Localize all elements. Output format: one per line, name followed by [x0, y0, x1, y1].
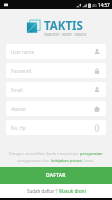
staticText: Email	[11, 87, 23, 93]
staticText: No. Hp	[11, 125, 26, 131]
staticText: TAKTIS	[44, 18, 83, 34]
staticText: penggunaan dan	[17, 158, 51, 163]
staticText: kami.	[83, 158, 95, 163]
staticText: Masuk disini	[59, 188, 86, 194]
staticText: User name	[11, 49, 35, 55]
staticText: 14:57	[98, 2, 110, 8]
staticText: Sudah daftar ?	[27, 188, 59, 194]
button[interactable]: Alamat	[6, 101, 106, 116]
staticText: 4G	[92, 3, 97, 8]
button[interactable]: User name	[6, 44, 106, 59]
staticText: DAFTAR	[46, 172, 66, 179]
staticText: kebijakan privasi	[51, 158, 83, 163]
staticText: TRANSPORT MONEY CREATIVE	[44, 33, 87, 37]
staticText: Dengan mendaftar, Anda menyetujui	[9, 151, 80, 156]
button[interactable]: DAFTAR	[0, 167, 112, 184]
staticText: Password	[11, 68, 32, 74]
staticText: Alamat	[11, 106, 26, 112]
button[interactable]: Password	[6, 63, 106, 78]
button[interactable]: Sudah daftar ?	[0, 184, 112, 198]
button[interactable]: Email	[6, 82, 106, 97]
button[interactable]: No. Hp	[6, 120, 106, 135]
staticText: persyaratan	[80, 151, 103, 156]
